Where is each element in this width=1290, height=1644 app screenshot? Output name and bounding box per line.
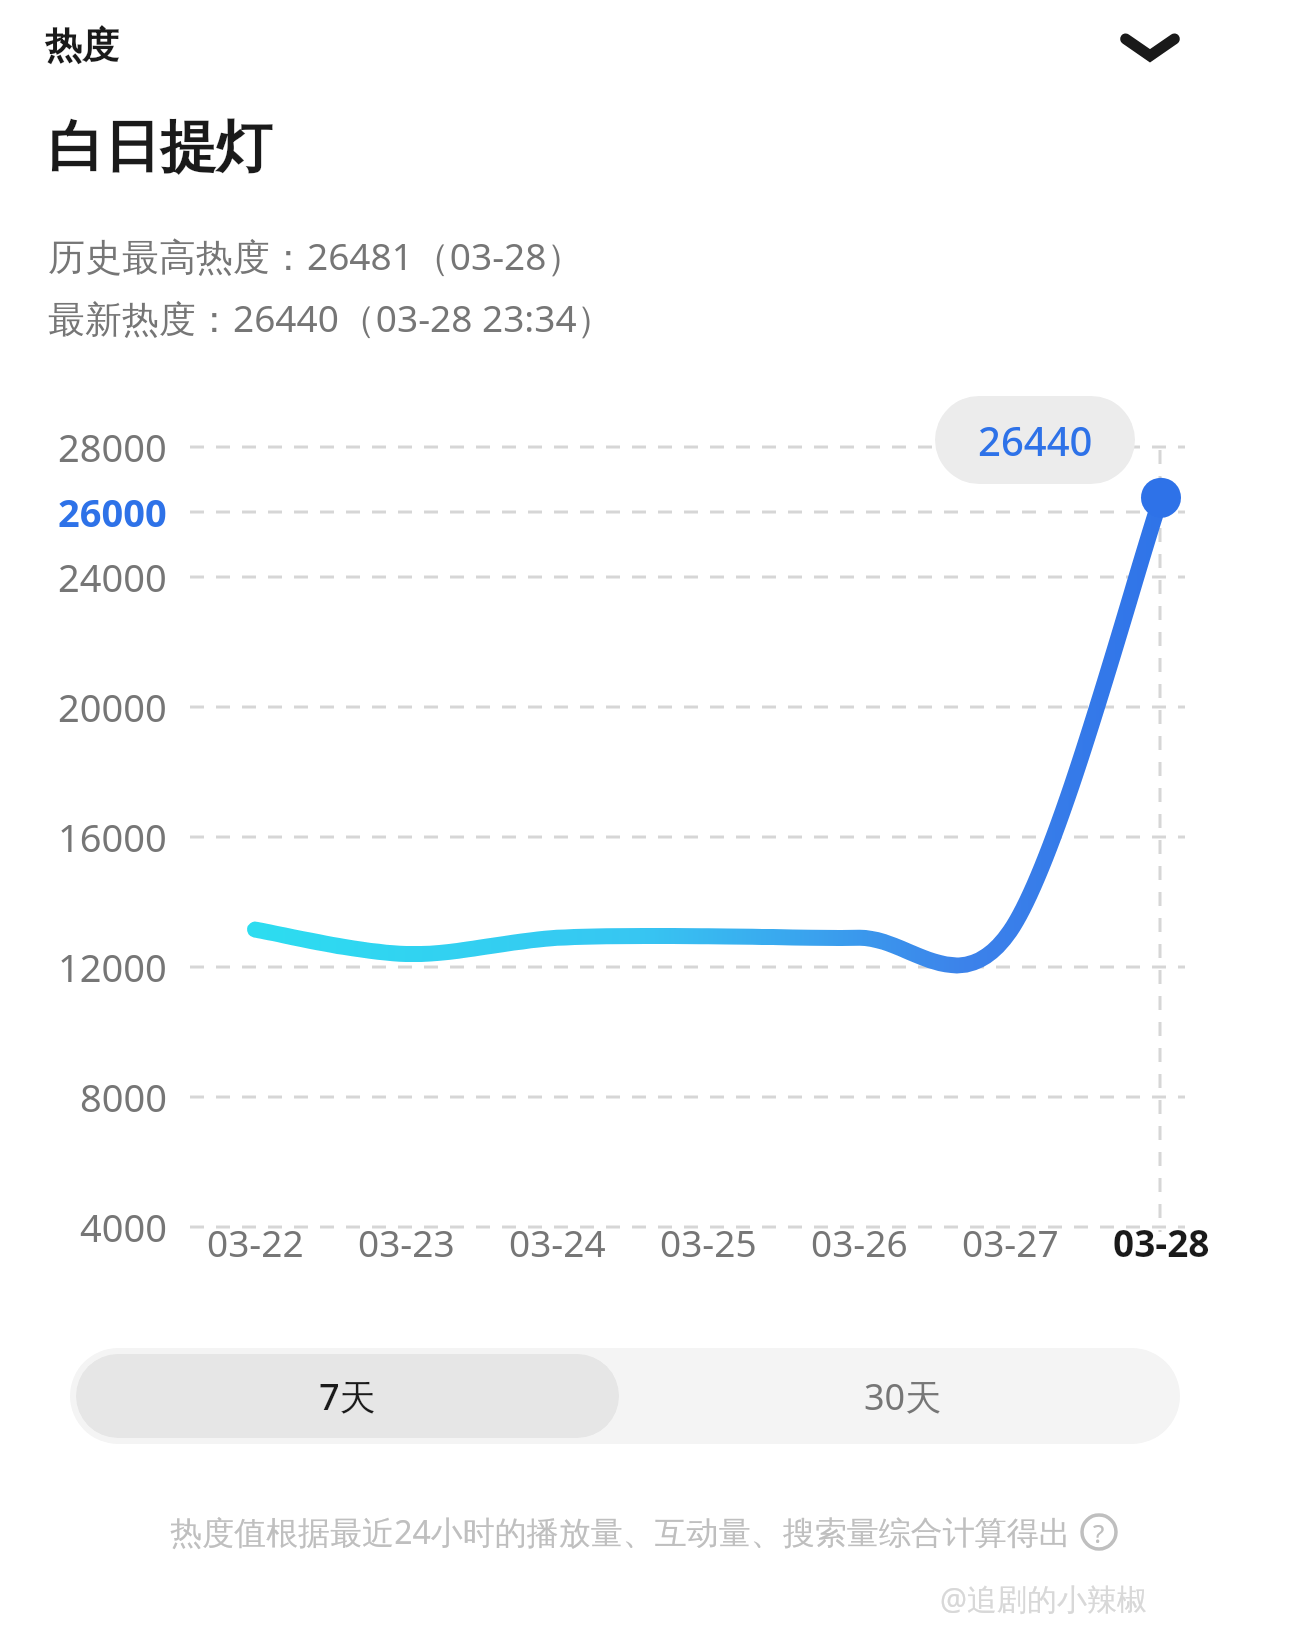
staticText: 26440 (978, 413, 1093, 467)
staticText: @追剧的小辣椒 (940, 1578, 1147, 1619)
staticText: 白日提灯 (48, 112, 272, 183)
staticText: 03-22 (207, 1217, 304, 1267)
staticText: ? (1093, 1515, 1105, 1550)
staticText: 16000 (58, 811, 167, 863)
staticText: 20000 (58, 681, 167, 733)
staticText: 7天 (319, 1372, 376, 1421)
button[interactable]: Collapse (1100, 8, 1200, 86)
button[interactable]: 30天 (625, 1348, 1180, 1444)
button[interactable]: Help (1077, 1510, 1121, 1554)
staticText: 03-27 (962, 1217, 1059, 1267)
staticText: 12000 (58, 941, 167, 993)
staticText: 30天 (864, 1372, 942, 1421)
staticText: 03-24 (509, 1217, 606, 1267)
staticText: 热度值根据最近24小时的播放量、互动量、搜索量综合计算得出 (170, 1510, 1071, 1554)
button[interactable]: 7天 (76, 1354, 619, 1438)
staticText: 4000 (80, 1201, 167, 1253)
staticText: 8000 (80, 1071, 167, 1123)
staticText: 热度 (45, 22, 119, 69)
staticText: 最新热度：26440（03-28 23:34） (48, 292, 614, 343)
staticText: 03-23 (358, 1217, 455, 1267)
staticText: 24000 (58, 551, 167, 603)
staticText: 03-25 (660, 1217, 757, 1267)
staticText: 26000 (58, 486, 167, 538)
staticText: 03-26 (811, 1217, 908, 1267)
staticText: 03-28 (1113, 1217, 1210, 1267)
staticText: 历史最高热度：26481（03-28） (48, 230, 584, 281)
staticText: 28000 (58, 421, 167, 473)
